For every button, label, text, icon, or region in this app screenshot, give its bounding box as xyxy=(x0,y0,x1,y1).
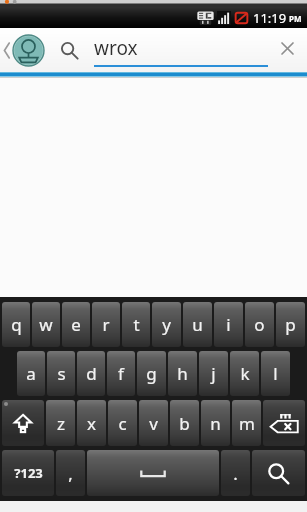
button[interactable]: q xyxy=(2,302,30,347)
button[interactable]: Search xyxy=(60,41,79,60)
button[interactable]: c xyxy=(108,400,137,446)
staticText: l xyxy=(273,362,278,385)
button[interactable]: s xyxy=(47,351,75,396)
button[interactable]: x xyxy=(77,400,106,446)
button[interactable]: j xyxy=(199,351,228,396)
button[interactable]: . xyxy=(221,450,250,496)
button[interactable]: b xyxy=(170,400,199,446)
button[interactable]: i xyxy=(214,302,243,347)
staticText: q xyxy=(11,313,22,336)
staticText: r xyxy=(102,313,110,336)
button[interactable]: Clear search xyxy=(271,28,307,72)
button[interactable]: d xyxy=(77,351,105,396)
staticText: a xyxy=(26,362,36,385)
staticText: d xyxy=(86,362,97,385)
staticText: h xyxy=(177,362,188,385)
button[interactable]: y xyxy=(152,302,181,347)
staticText: , xyxy=(68,462,73,485)
button[interactable]: t xyxy=(122,302,150,347)
button[interactable]: e xyxy=(62,302,90,347)
button[interactable]: n xyxy=(201,400,230,446)
staticText: e xyxy=(71,313,81,336)
staticText: m xyxy=(239,412,255,435)
staticText: k xyxy=(240,362,250,385)
button[interactable]: h xyxy=(168,351,197,396)
button[interactable]: ?123 xyxy=(2,450,54,496)
button[interactable]: Delete xyxy=(263,400,305,446)
staticText: w xyxy=(39,313,53,336)
button[interactable]: k xyxy=(230,351,259,396)
button[interactable]: l xyxy=(261,351,290,396)
staticText: j xyxy=(211,362,216,385)
button[interactable]: p xyxy=(276,302,305,347)
staticText: . xyxy=(233,462,238,485)
button[interactable]: r xyxy=(92,302,120,347)
staticText: c xyxy=(118,412,127,435)
staticText: f xyxy=(118,362,124,385)
button[interactable]: f xyxy=(107,351,135,396)
staticText: u xyxy=(192,313,203,336)
button[interactable]: , xyxy=(56,450,85,496)
button[interactable]: m xyxy=(232,400,261,446)
button[interactable]: Open app, back xyxy=(0,28,47,72)
staticText: p xyxy=(285,313,296,336)
button[interactable]: z xyxy=(46,400,75,446)
staticText: v xyxy=(149,412,158,435)
button[interactable]: v xyxy=(139,400,168,446)
staticText: g xyxy=(146,362,157,385)
staticText: 11:19 xyxy=(253,9,287,27)
staticText: s xyxy=(57,362,66,385)
button[interactable]: a xyxy=(17,351,45,396)
staticText: i xyxy=(226,313,231,336)
button[interactable]: w xyxy=(32,302,60,347)
staticText: t xyxy=(133,313,140,336)
button[interactable]: u xyxy=(183,302,212,347)
button[interactable]: Space xyxy=(87,450,219,496)
staticText: ?123 xyxy=(14,464,43,482)
button[interactable]: Shift xyxy=(2,400,44,446)
staticText: n xyxy=(210,412,221,435)
button[interactable]: Search xyxy=(252,450,305,496)
staticText: y xyxy=(162,313,171,336)
button[interactable]: g xyxy=(137,351,166,396)
button[interactable]: o xyxy=(245,302,274,347)
staticText: x xyxy=(87,412,96,435)
staticText: z xyxy=(57,412,65,435)
staticText: b xyxy=(179,412,190,435)
staticText: wrox xyxy=(94,35,138,61)
staticText: PM xyxy=(289,13,302,24)
staticText: o xyxy=(254,313,265,336)
